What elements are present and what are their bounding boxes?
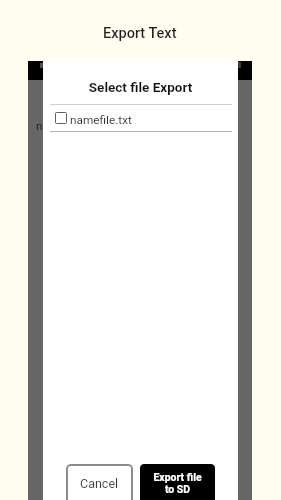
- staticText: Export Text: [103, 25, 177, 42]
- button[interactable]: namefile.txt: [43, 105, 238, 131]
- staticText: Select file Export: [43, 79, 238, 95]
- staticText: Export file to SD: [153, 471, 202, 495]
- staticText: na: [36, 119, 49, 132]
- staticText: Cancel: [80, 476, 119, 491]
- button[interactable]: Export file to SD: [140, 464, 215, 500]
- button[interactable]: Cancel: [66, 464, 133, 500]
- staticText: namefile.txt: [70, 113, 132, 127]
